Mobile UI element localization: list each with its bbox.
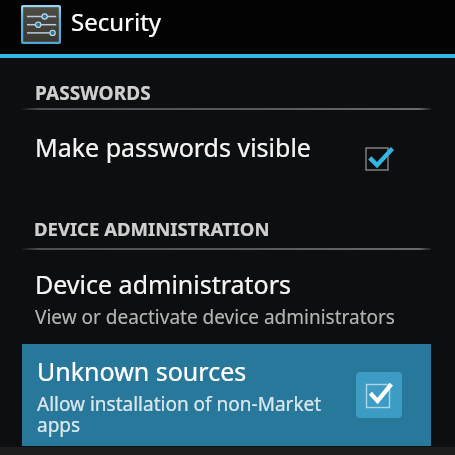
other: Settings [21, 5, 61, 44]
staticText: Security [71, 5, 162, 38]
button[interactable]: Unknown sources [22, 344, 431, 446]
staticText: Make passwords visible [35, 130, 311, 164]
button[interactable]: Unknown sources checkbox [356, 372, 402, 418]
staticText: Allow installation of non-Market apps [37, 391, 356, 438]
staticText: PASSWORDS [35, 80, 151, 106]
staticText: DEVICE ADMINISTRATION [34, 216, 270, 241]
staticText: View or deactivate device administrators [35, 304, 395, 330]
button[interactable]: Make passwords visible checkbox [361, 143, 393, 175]
button[interactable]: Settings [0, 0, 455, 53]
staticText: Unknown sources [37, 354, 247, 388]
button[interactable]: Device administrators [0, 258, 455, 334]
button[interactable]: Make passwords visible [0, 112, 455, 182]
staticText: Device administrators [35, 267, 292, 301]
